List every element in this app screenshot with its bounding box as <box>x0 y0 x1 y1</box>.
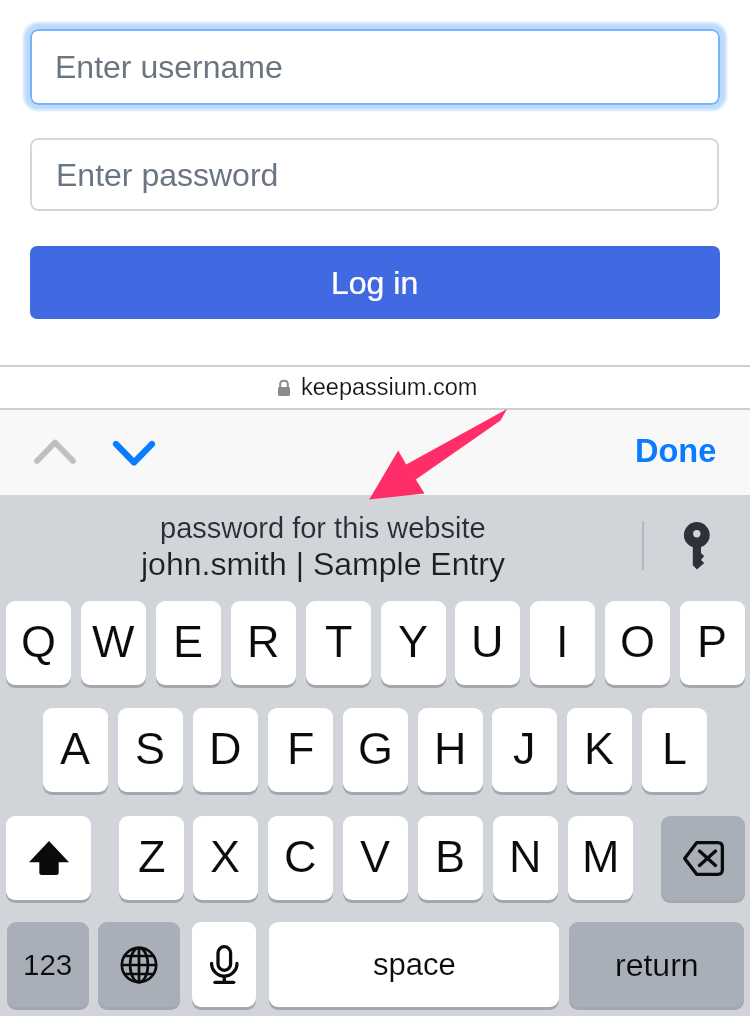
staticText: Q <box>21 616 57 666</box>
button[interactable]: Open password manager <box>668 508 726 576</box>
button[interactable]: V <box>343 816 408 900</box>
staticText: space <box>373 947 456 982</box>
staticText: return <box>615 947 699 983</box>
staticText: V <box>360 831 391 881</box>
staticText: A <box>60 723 91 773</box>
staticText: W <box>92 616 135 666</box>
button[interactable]: space <box>269 922 559 1007</box>
button[interactable]: return <box>569 922 744 1007</box>
staticText: H <box>434 723 467 773</box>
button[interactable]: Log in <box>30 246 720 319</box>
button[interactable]: F <box>268 708 333 792</box>
button[interactable]: Z <box>119 816 184 900</box>
button[interactable]: R <box>231 601 296 685</box>
button[interactable]: O <box>605 601 670 685</box>
staticText: G <box>358 723 394 773</box>
staticText: Enter username <box>55 49 283 85</box>
button[interactable]: D <box>193 708 258 792</box>
staticText: C <box>284 831 317 881</box>
staticText: Log in <box>331 265 419 301</box>
staticText: 123 <box>23 948 73 981</box>
button[interactable]: W <box>81 601 146 685</box>
button[interactable]: password for this website <box>0 512 646 582</box>
staticText: F <box>287 723 315 773</box>
button[interactable]: S <box>118 708 183 792</box>
button[interactable]: L <box>642 708 707 792</box>
button[interactable]: Switch keyboard <box>98 922 180 1007</box>
button[interactable]: C <box>268 816 333 900</box>
button[interactable]: Shift <box>6 816 91 900</box>
staticText: S <box>135 723 166 773</box>
button[interactable]: Previous field <box>23 420 87 484</box>
button[interactable]: Enter password <box>30 138 719 211</box>
button[interactable]: Next field <box>102 421 166 485</box>
staticText: N <box>509 831 542 881</box>
staticText: john.smith | Sample Entry <box>141 546 506 582</box>
staticText: Z <box>138 831 166 881</box>
button[interactable]: J <box>492 708 557 792</box>
staticText: R <box>247 616 280 666</box>
button[interactable]: P <box>680 601 745 685</box>
staticText: O <box>620 616 656 666</box>
staticText: U <box>471 616 504 666</box>
staticText: D <box>209 723 242 773</box>
staticText: password for this website <box>160 512 486 544</box>
button[interactable]: Enter username <box>30 29 720 105</box>
button[interactable]: Backspace <box>661 816 745 900</box>
button[interactable]: M <box>568 816 633 900</box>
button[interactable]: T <box>306 601 371 685</box>
button[interactable]: U <box>455 601 520 685</box>
button[interactable]: Y <box>381 601 446 685</box>
staticText: E <box>173 616 204 666</box>
button[interactable]: Dictation <box>192 922 256 1007</box>
staticText: keepassium.com <box>301 374 478 400</box>
button[interactable]: E <box>156 601 221 685</box>
button[interactable]: Q <box>6 601 71 685</box>
button[interactable]: 123 <box>7 922 89 1007</box>
button[interactable]: N <box>493 816 558 900</box>
button[interactable]: A <box>43 708 108 792</box>
staticText: X <box>210 831 241 881</box>
button[interactable]: I <box>530 601 595 685</box>
staticText: M <box>582 831 620 881</box>
staticText: L <box>662 723 688 773</box>
staticText: K <box>584 723 615 773</box>
button[interactable]: G <box>343 708 408 792</box>
staticText: Y <box>398 616 429 666</box>
staticText: Enter password <box>56 157 279 193</box>
staticText: Done <box>635 433 717 469</box>
staticText: J <box>513 723 536 773</box>
button[interactable]: B <box>418 816 483 900</box>
button[interactable]: Done <box>614 414 738 488</box>
button[interactable]: X <box>193 816 258 900</box>
button[interactable]: K <box>567 708 632 792</box>
button[interactable]: H <box>418 708 483 792</box>
staticText: B <box>435 831 466 881</box>
button[interactable]: keepassium.com <box>0 366 750 408</box>
staticText: I <box>556 616 569 666</box>
staticText: T <box>325 616 353 666</box>
staticText: P <box>697 616 728 666</box>
